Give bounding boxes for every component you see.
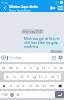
button[interactable]: t xyxy=(28,64,34,71)
button[interactable]: c xyxy=(20,82,27,89)
button[interactable]: d xyxy=(18,73,25,80)
button[interactable]: Attach image xyxy=(57,53,64,62)
staticText: Đang hoạt động xyxy=(9,9,31,12)
button[interactable]: q xyxy=(0,64,7,71)
staticText: m xyxy=(50,83,54,89)
staticText: n xyxy=(43,83,46,89)
staticText: x xyxy=(16,83,19,89)
button[interactable]: s xyxy=(11,73,18,80)
staticText: h xyxy=(39,74,42,80)
button[interactable]: w xyxy=(7,64,14,71)
staticText: Nhóm bạn thân xyxy=(9,4,39,9)
button[interactable]: r xyxy=(21,64,28,71)
button[interactable]: z xyxy=(8,82,14,89)
button[interactable]: Video call xyxy=(48,4,56,12)
button[interactable]: b xyxy=(34,82,41,89)
staticText: l xyxy=(57,74,59,80)
button[interactable]: Options xyxy=(56,4,64,12)
staticText: v xyxy=(29,83,32,89)
button[interactable]: Tin nhắn xyxy=(7,53,50,62)
button[interactable]: o xyxy=(52,64,58,71)
staticText: c xyxy=(22,83,25,89)
staticText: e xyxy=(16,65,19,71)
staticText: p xyxy=(60,65,63,71)
button[interactable]: Enter xyxy=(55,91,64,98)
staticText: Hôm nay 09:41 xyxy=(23,30,43,34)
staticText: d xyxy=(20,74,23,80)
button[interactable]: n xyxy=(41,82,48,89)
staticText: w xyxy=(9,65,13,71)
staticText: Mình vừa gửi tài liệu rồi nhé, bạn kiểm … xyxy=(24,37,60,48)
button[interactable]: k xyxy=(49,73,55,80)
staticText: ?123 xyxy=(2,93,8,97)
button[interactable]: m xyxy=(48,82,55,89)
button[interactable]: v xyxy=(27,82,34,89)
button[interactable]: p xyxy=(58,64,64,71)
button[interactable]: Đã nhận xyxy=(50,50,63,53)
button[interactable]: Backspace xyxy=(55,82,64,89)
staticText: a xyxy=(6,74,9,80)
staticText: b xyxy=(36,83,39,89)
staticText: y xyxy=(36,65,39,71)
button[interactable]: Hôm nay 09:41 xyxy=(21,29,44,34)
staticText: g xyxy=(33,74,36,80)
staticText: q xyxy=(2,65,5,71)
button[interactable]: Emoji xyxy=(50,53,57,62)
button[interactable]: Mình vừa gửi tài liệu rồi nhé, bạn kiểm … xyxy=(22,36,62,49)
button[interactable]: Shift xyxy=(0,82,8,89)
button[interactable]: h xyxy=(37,73,43,80)
staticText: Đã nhận xyxy=(51,50,63,53)
button[interactable]: i xyxy=(46,64,52,71)
button[interactable]: x xyxy=(14,82,20,89)
button[interactable]: ?123 xyxy=(0,91,9,98)
staticText: t xyxy=(30,65,32,71)
staticText: j xyxy=(45,74,47,80)
button[interactable]: . xyxy=(49,91,55,98)
button[interactable]: Voice input xyxy=(15,91,21,98)
staticText: . xyxy=(51,92,53,98)
button[interactable]: u xyxy=(40,64,46,71)
button[interactable]: g xyxy=(31,73,37,80)
staticText: k xyxy=(51,74,54,80)
button[interactable]: e xyxy=(14,64,21,71)
staticText: f xyxy=(27,74,29,80)
staticText: r xyxy=(24,65,26,71)
button[interactable]: l xyxy=(55,73,61,80)
button[interactable]: Back xyxy=(0,4,9,12)
staticText: i xyxy=(48,65,50,71)
staticText: o xyxy=(54,65,57,71)
staticText: u xyxy=(42,65,45,71)
button[interactable]: j xyxy=(43,73,49,80)
button[interactable]: Emoji xyxy=(9,91,15,98)
staticText: z xyxy=(10,83,12,89)
button[interactable]: y xyxy=(34,64,40,71)
staticText: s xyxy=(13,74,16,80)
button[interactable]: f xyxy=(25,73,31,80)
button[interactable]: Show more xyxy=(0,53,7,62)
staticText: Tin nhắn xyxy=(9,56,23,60)
button[interactable]: a xyxy=(4,73,11,80)
